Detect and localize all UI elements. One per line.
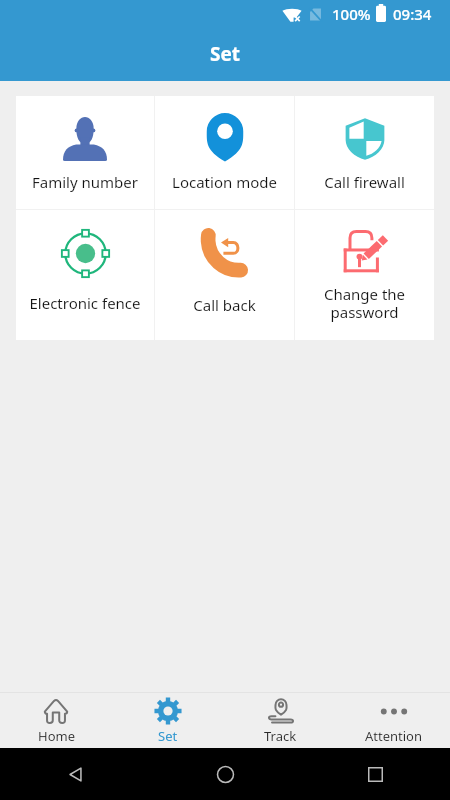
button[interactable]: Location mode <box>155 96 294 209</box>
button[interactable]: Change the password <box>295 210 434 340</box>
staticText: Location mode <box>158 172 291 192</box>
staticText: Set <box>158 727 178 745</box>
staticText: 09:34 <box>393 4 432 24</box>
button[interactable]: Back <box>58 757 92 791</box>
staticText: Family number <box>19 172 151 192</box>
staticText: Electronic fence <box>19 293 151 313</box>
button[interactable]: Home <box>208 757 242 791</box>
button[interactable]: Call back <box>155 210 294 340</box>
button[interactable]: Attention <box>337 693 450 748</box>
button[interactable]: Set <box>112 693 224 748</box>
staticText: Call firewall <box>298 172 431 192</box>
staticText: Set <box>210 41 241 67</box>
button[interactable]: Home <box>0 693 112 748</box>
button[interactable]: Electronic fence <box>16 210 154 340</box>
staticText: Change the password <box>298 284 431 323</box>
button[interactable]: Call firewall <box>295 96 434 209</box>
staticText: Home <box>38 727 75 745</box>
staticText: Call back <box>158 295 291 315</box>
staticText: Track <box>264 727 297 745</box>
staticText: Attention <box>365 727 423 745</box>
staticText: 100% <box>332 4 371 24</box>
button[interactable]: Family number <box>16 96 154 209</box>
button[interactable]: Recent apps <box>358 757 392 791</box>
button[interactable]: Track <box>224 693 337 748</box>
